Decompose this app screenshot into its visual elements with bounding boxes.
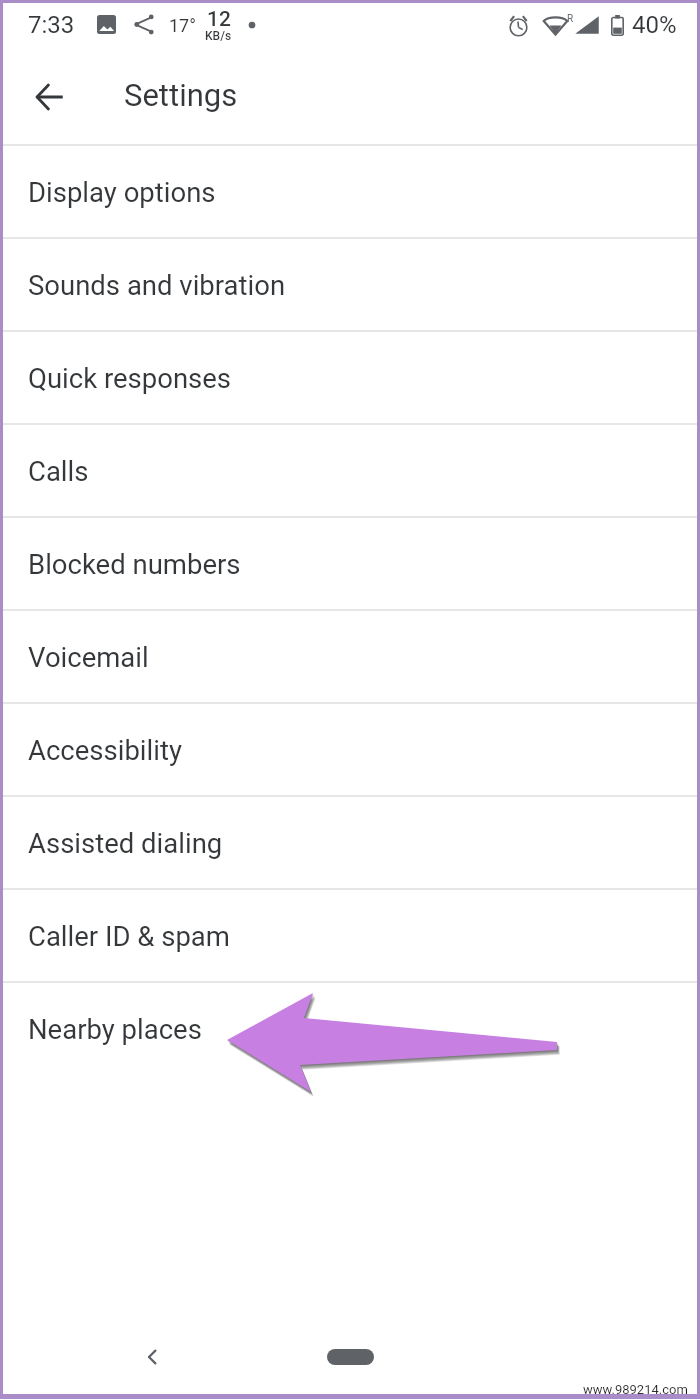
button[interactable]: Navigate back — [129, 1333, 177, 1381]
staticText: 12 — [207, 7, 231, 32]
staticText: 17° — [169, 15, 196, 36]
staticText: Voicemail — [28, 641, 149, 673]
staticText: KB/s — [205, 29, 232, 43]
staticText: Accessibility — [28, 734, 182, 766]
staticText: 40% — [632, 11, 677, 39]
staticText: Blocked numbers — [28, 548, 241, 580]
button[interactable]: Home — [327, 1349, 374, 1365]
staticText: Sounds and vibration — [28, 269, 286, 301]
staticText: Calls — [28, 455, 89, 487]
staticText: Nearby places — [28, 1013, 202, 1045]
button[interactable]: Quick responses — [3, 332, 697, 423]
button[interactable]: Voicemail — [3, 611, 697, 702]
staticText: R — [567, 13, 574, 25]
button[interactable]: Nearby places — [3, 983, 697, 1074]
button[interactable]: Caller ID & spam — [3, 890, 697, 981]
staticText: www.989214.com — [583, 1382, 688, 1397]
staticText: 7:33 — [28, 11, 75, 39]
button[interactable]: Accessibility — [3, 704, 697, 795]
staticText: Quick responses — [28, 362, 232, 394]
staticText: Caller ID & spam — [28, 920, 230, 952]
button[interactable]: Sounds and vibration — [3, 239, 697, 330]
button[interactable]: Calls — [3, 425, 697, 516]
button[interactable]: Back — [23, 71, 75, 123]
button[interactable]: Assisted dialing — [3, 797, 697, 888]
button[interactable]: Display options — [3, 146, 697, 237]
staticText: Assisted dialing — [28, 827, 223, 859]
button[interactable]: Blocked numbers — [3, 518, 697, 609]
staticText: Settings — [124, 77, 238, 113]
staticText: Display options — [28, 176, 216, 208]
